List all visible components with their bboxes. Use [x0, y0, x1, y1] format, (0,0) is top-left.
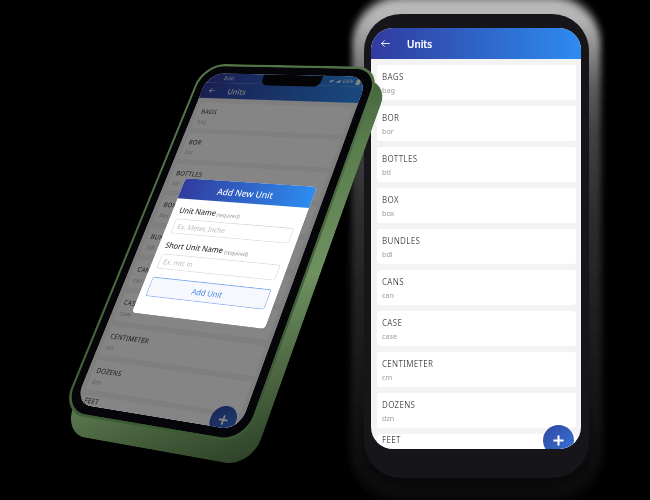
staticText: bor	[184, 148, 195, 156]
button[interactable]: FEET	[79, 394, 239, 430]
staticText: Ex. Meter, Inche	[176, 222, 227, 236]
button[interactable]: BUNDLES	[377, 229, 576, 264]
staticText: Add New Unit	[215, 185, 276, 201]
staticText: BAGS	[200, 107, 219, 116]
staticText: 8:06	[223, 75, 236, 82]
button[interactable]: FEET	[377, 434, 576, 449]
staticText: Units	[407, 37, 433, 51]
staticText: can	[132, 275, 144, 284]
staticText: cm	[382, 372, 393, 382]
staticText: FEET	[83, 395, 101, 406]
staticText: bdl	[382, 249, 393, 259]
button[interactable]: BAGS	[191, 102, 353, 135]
staticText: case	[118, 309, 133, 318]
staticText: CASE	[382, 317, 403, 328]
staticText: BOR	[187, 137, 204, 146]
staticText: ft	[382, 448, 388, 449]
staticText: DOZENS	[382, 399, 416, 410]
staticText: bag	[382, 85, 395, 95]
staticText: Units	[226, 86, 249, 97]
staticText: case	[382, 331, 397, 341]
staticText: Short Unit Name	[164, 240, 226, 256]
button[interactable]: CASE	[377, 311, 576, 346]
button[interactable]: CANS	[126, 259, 292, 304]
staticText: dzn	[382, 413, 395, 423]
staticText: cm	[105, 342, 116, 352]
staticText: BAGS	[382, 71, 404, 82]
staticText: bdl	[145, 243, 156, 251]
staticText: BUNDLES	[149, 232, 181, 243]
staticText: CENTIMETER	[382, 358, 434, 369]
staticText: btl	[171, 179, 180, 187]
button[interactable]: Back	[378, 36, 393, 51]
button[interactable]: BOX	[153, 195, 317, 235]
staticText: BOX	[382, 194, 399, 205]
staticText: BOTTLES	[175, 168, 205, 178]
staticText: BOR	[382, 112, 400, 123]
button[interactable]: CENTIMETER	[377, 352, 576, 387]
button[interactable]: BOR	[178, 133, 341, 168]
staticText: can	[382, 290, 394, 300]
staticText: (required)	[222, 248, 250, 258]
staticText: BUNDLES	[382, 235, 421, 246]
button[interactable]: DOZENS	[85, 359, 252, 414]
button[interactable]: Add Unit	[145, 277, 272, 310]
staticText: (required)	[214, 211, 241, 220]
button[interactable]: Ex. Meter, Inche	[170, 218, 294, 244]
button[interactable]: CANS	[377, 270, 576, 305]
staticText: DOZENS	[95, 365, 124, 378]
staticText: box	[382, 208, 395, 218]
button[interactable]: BUNDLES	[140, 227, 304, 269]
staticText: FEET	[382, 434, 401, 445]
staticText: BOX	[162, 200, 178, 209]
button[interactable]: Back	[205, 85, 220, 96]
staticText: dzn	[91, 377, 104, 387]
staticText: BOTTLES	[382, 153, 418, 164]
staticText: box	[158, 211, 171, 219]
staticText: CENTIMETER	[109, 331, 151, 345]
button[interactable]: BAGS	[377, 65, 576, 100]
staticText: 64%	[341, 78, 355, 86]
button[interactable]: BOR	[377, 106, 576, 141]
button[interactable]: Add unit	[543, 425, 574, 449]
staticText: bag	[196, 117, 208, 125]
button[interactable]: BOTTLES	[166, 164, 329, 201]
button[interactable]: Ex. mtr, in	[156, 253, 281, 281]
staticText: Ex. mtr, in	[162, 257, 195, 270]
staticText: CANS	[382, 276, 404, 287]
staticText: CASE	[123, 297, 142, 308]
staticText: Add Unit	[190, 286, 224, 300]
staticText: bor	[382, 126, 394, 136]
staticText: Unit Name	[177, 205, 218, 218]
staticText: CANS	[136, 264, 156, 275]
button[interactable]: BOTTLES	[377, 147, 576, 182]
button[interactable]: DOZENS	[377, 393, 576, 428]
button[interactable]: CENTIMETER	[99, 325, 266, 377]
button[interactable]: Add unit	[208, 404, 241, 430]
button[interactable]: BOX	[377, 188, 576, 223]
staticText: btl	[382, 167, 391, 177]
button[interactable]: CASE	[113, 292, 279, 340]
